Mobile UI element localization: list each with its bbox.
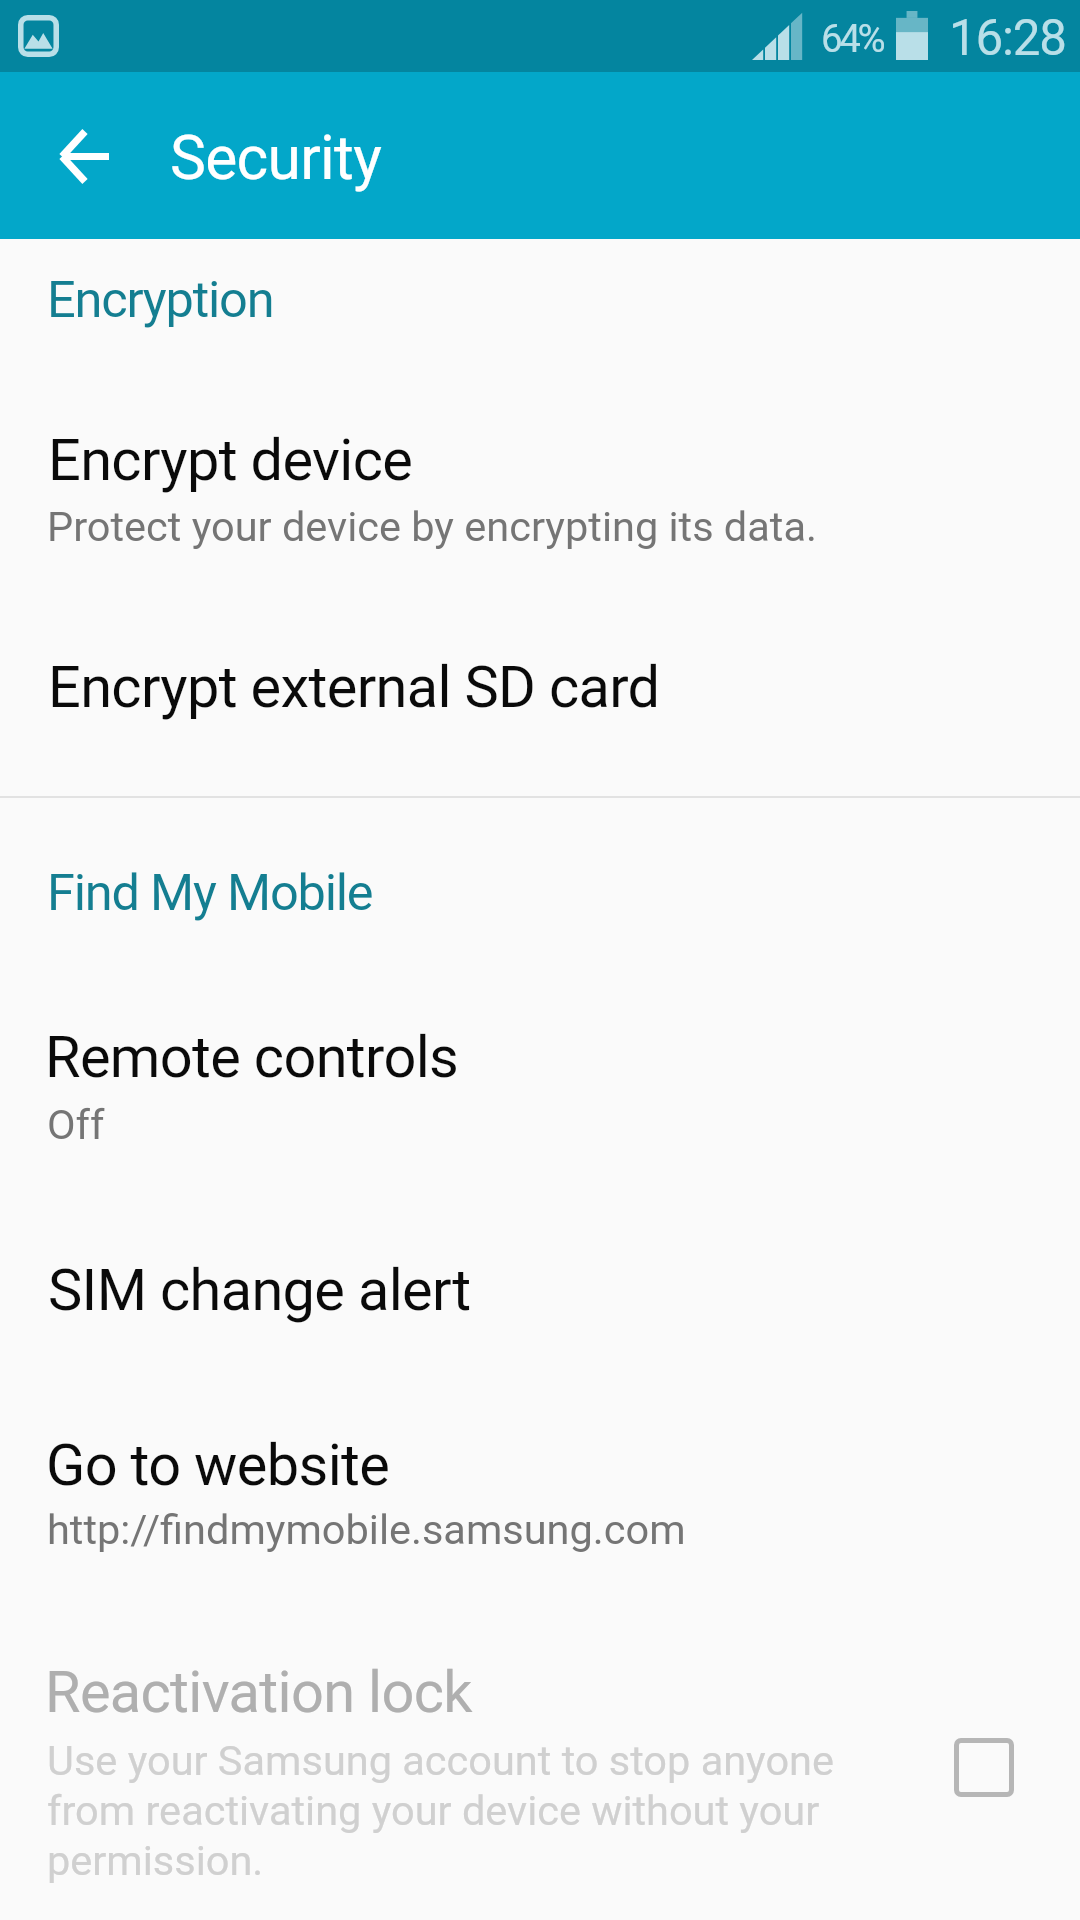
button[interactable]: Encrypt device: [0, 380, 1080, 580]
staticText: Reactivation lock: [45, 1658, 472, 1726]
staticText: Find My Mobile: [47, 863, 373, 922]
staticText: Encrypt device: [48, 426, 413, 494]
button[interactable]: Reactivation lock, off: [954, 1738, 1014, 1797]
staticText: Use your Samsung account to stop anyone …: [47, 1736, 862, 1885]
staticText: Encryption: [47, 270, 274, 329]
staticText: Encrypt external SD card: [48, 653, 660, 721]
button[interactable]: Reactivation lock: [0, 1620, 1080, 1920]
button[interactable]: Go to website: [0, 1395, 1080, 1590]
staticText: Off: [47, 1100, 105, 1149]
staticText: SIM change alert: [48, 1256, 471, 1324]
staticText: http://findmymobile.samsung.com: [47, 1505, 686, 1554]
staticText: 16:28: [949, 9, 1066, 67]
button[interactable]: SIM change alert: [0, 1220, 1080, 1390]
staticText: 64%: [821, 16, 883, 61]
button[interactable]: Remote controls: [0, 980, 1080, 1175]
staticText: Remote controls: [45, 1023, 459, 1091]
staticText: Security: [170, 123, 382, 194]
button[interactable]: Navigate up: [0, 72, 168, 239]
button[interactable]: Encrypt external SD card: [0, 620, 1080, 790]
staticText: Go to website: [46, 1431, 390, 1499]
staticText: Protect your device by encrypting its da…: [47, 502, 817, 551]
